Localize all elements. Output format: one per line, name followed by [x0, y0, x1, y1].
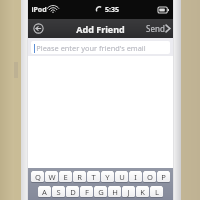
button[interactable]: U: [115, 171, 128, 183]
button[interactable]: I: [129, 171, 142, 183]
button[interactable]: Q: [31, 171, 44, 183]
button[interactable]: K: [136, 186, 149, 198]
staticText: H: [112, 187, 118, 197]
button[interactable]: Back: [31, 21, 46, 36]
staticText: R: [77, 172, 82, 182]
staticText: S: [56, 187, 61, 197]
button[interactable]: H: [108, 186, 121, 198]
button[interactable]: G: [94, 186, 107, 198]
staticText: L: [155, 187, 159, 197]
button[interactable]: R: [73, 171, 86, 183]
button[interactable]: Please enter your friend's email: [31, 41, 170, 54]
button[interactable]: A: [38, 186, 51, 198]
staticText: E: [63, 172, 68, 182]
button[interactable]: Add Friend: [76, 23, 125, 35]
button[interactable]: Y: [101, 171, 114, 183]
button[interactable]: F: [80, 186, 93, 198]
staticText: T: [91, 172, 96, 182]
staticText: Add Friend: [76, 23, 125, 35]
button[interactable]: P: [157, 171, 170, 183]
staticText: D: [70, 187, 76, 197]
staticText: G: [98, 187, 104, 197]
staticText: W: [48, 172, 56, 182]
staticText: O: [147, 172, 153, 182]
button[interactable]: T: [87, 171, 100, 183]
staticText: Q: [35, 172, 41, 182]
button[interactable]: W: [45, 171, 58, 183]
staticText: J: [127, 187, 130, 197]
staticText: Y: [105, 172, 110, 182]
button[interactable]: O: [143, 171, 156, 183]
staticText: K: [140, 187, 145, 197]
button[interactable]: E: [59, 171, 72, 183]
button[interactable]: D: [66, 186, 79, 198]
button[interactable]: J: [122, 186, 135, 198]
staticText: Please enter your friend's email: [36, 43, 146, 53]
button[interactable]: L: [150, 186, 163, 198]
staticText: I: [134, 172, 137, 182]
button[interactable]: S: [52, 186, 65, 198]
staticText: Send: [146, 23, 165, 34]
staticText: F: [85, 187, 89, 197]
staticText: 5:35: [105, 5, 119, 15]
staticText: iPod: [31, 5, 47, 15]
button[interactable]: Send: [146, 23, 171, 34]
staticText: U: [119, 172, 125, 182]
staticText: A: [42, 187, 47, 197]
staticText: P: [161, 172, 166, 182]
